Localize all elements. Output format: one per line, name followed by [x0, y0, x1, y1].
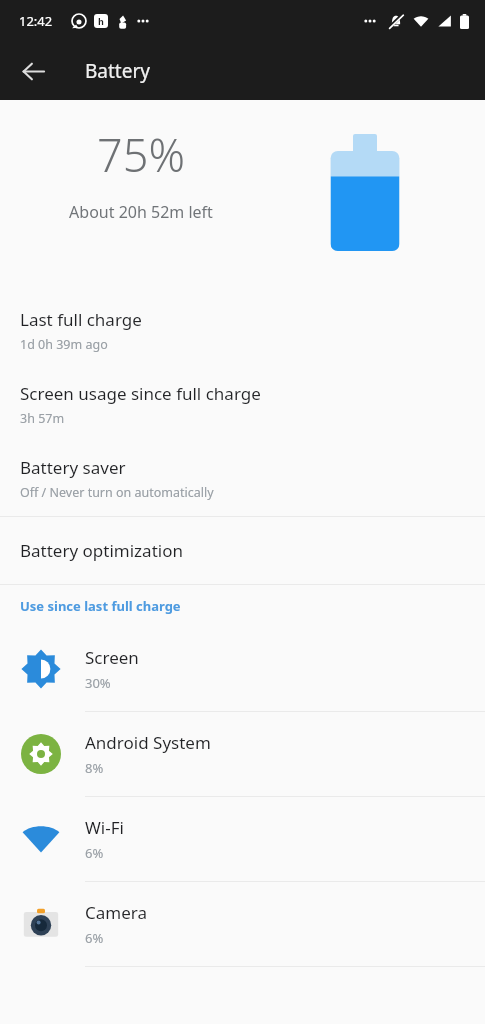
button[interactable]: Screen usage since full charge: [0, 368, 485, 442]
staticText: 8%: [85, 759, 104, 777]
staticText: Screen: [85, 646, 139, 669]
staticText: Battery: [85, 58, 150, 84]
button[interactable]: Battery saver: [0, 442, 485, 516]
staticText: 6%: [85, 929, 104, 947]
staticText: Battery optimization: [20, 539, 183, 562]
staticText: 75%: [97, 124, 185, 185]
staticText: Android System: [85, 731, 211, 754]
button[interactable]: Wi-Fi: [0, 797, 485, 881]
staticText: Last full charge: [20, 308, 142, 331]
staticText: Battery saver: [20, 456, 126, 479]
button[interactable]: Back: [13, 51, 53, 91]
button[interactable]: Android System: [0, 712, 485, 796]
staticText: Screen usage since full charge: [20, 382, 261, 405]
staticText: Use since last full charge: [20, 597, 181, 615]
staticText: Camera: [85, 901, 147, 924]
staticText: Wi-Fi: [85, 816, 124, 839]
button[interactable]: Camera: [0, 882, 485, 966]
staticText: Off / Never turn on automatically: [20, 484, 214, 501]
staticText: 6%: [85, 844, 104, 862]
staticText: 12:42: [19, 12, 53, 30]
staticText: 1d 0h 39m ago: [20, 336, 108, 353]
staticText: h: [98, 15, 104, 27]
staticText: 3h 57m: [20, 410, 65, 427]
button[interactable]: Last full charge: [0, 294, 485, 368]
button[interactable]: Screen: [0, 627, 485, 711]
staticText: 30%: [85, 674, 111, 692]
button[interactable]: Battery optimization: [0, 517, 485, 584]
staticText: About 20h 52m left: [69, 201, 213, 223]
